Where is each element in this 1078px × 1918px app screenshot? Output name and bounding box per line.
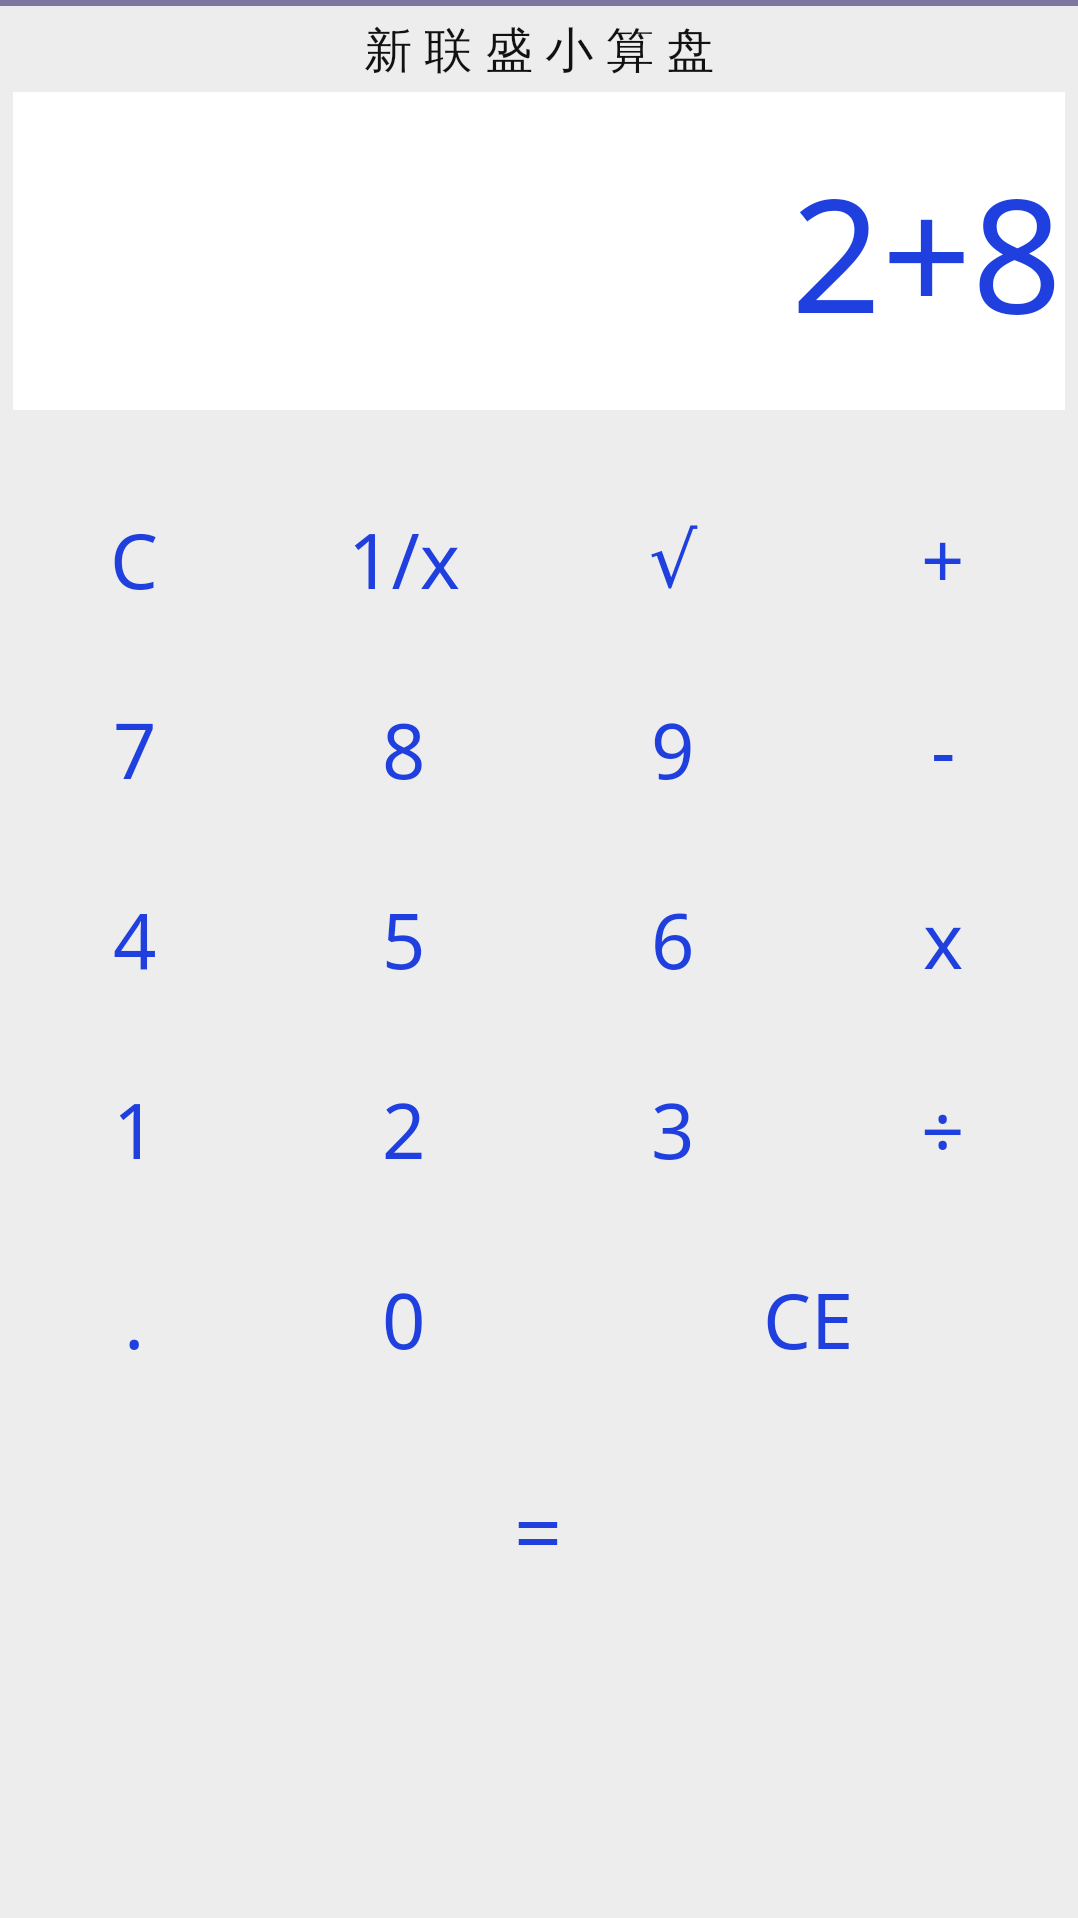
staticText: CE <box>763 1268 854 1372</box>
staticText: 8 <box>382 698 426 802</box>
button[interactable]: 6 <box>538 845 808 1035</box>
staticText: 1/x <box>348 508 460 612</box>
staticText: 4 <box>113 888 157 992</box>
button[interactable]: 2 <box>269 1035 538 1225</box>
button[interactable]: Reciprocal <box>269 465 538 655</box>
button[interactable]: 5 <box>269 845 538 1035</box>
button[interactable]: Equals <box>269 1415 808 1645</box>
button[interactable]: Multiply <box>808 845 1078 1035</box>
button[interactable]: 2+8 <box>13 92 1065 410</box>
button[interactable]: Clear <box>0 465 269 655</box>
button[interactable]: Square root <box>538 465 808 655</box>
staticText: = <box>514 1473 563 1587</box>
staticText: 5 <box>382 888 426 992</box>
button[interactable]: Clear entry <box>539 1225 1078 1415</box>
button[interactable]: Divide <box>808 1035 1078 1225</box>
button[interactable]: 7 <box>0 655 269 845</box>
staticText: + <box>921 508 965 612</box>
staticText: 2 <box>382 1078 426 1182</box>
staticText: 3 <box>651 1078 695 1182</box>
staticText: √ <box>649 516 698 604</box>
staticText: x <box>923 888 964 992</box>
button[interactable]: 8 <box>269 655 538 845</box>
button[interactable]: Minus <box>808 655 1078 845</box>
staticText: 2+8 <box>791 144 1063 359</box>
staticText: 新 联 盛 小 算 盘 <box>364 16 715 82</box>
button[interactable]: Plus <box>808 465 1078 655</box>
staticText: 0 <box>382 1268 426 1372</box>
button[interactable]: 4 <box>0 845 269 1035</box>
staticText: - <box>931 698 956 802</box>
staticText: 6 <box>651 888 695 992</box>
button[interactable]: Decimal point <box>0 1225 269 1415</box>
button[interactable]: 1 <box>0 1035 269 1225</box>
button[interactable]: 9 <box>538 655 808 845</box>
button[interactable]: 0 <box>269 1225 539 1415</box>
staticText: C <box>110 508 159 612</box>
staticText: 7 <box>113 698 157 802</box>
staticText: 1 <box>113 1078 157 1182</box>
staticText: ÷ <box>921 1078 965 1182</box>
staticText: . <box>124 1268 145 1372</box>
staticText: 9 <box>651 698 695 802</box>
button[interactable]: 3 <box>538 1035 808 1225</box>
